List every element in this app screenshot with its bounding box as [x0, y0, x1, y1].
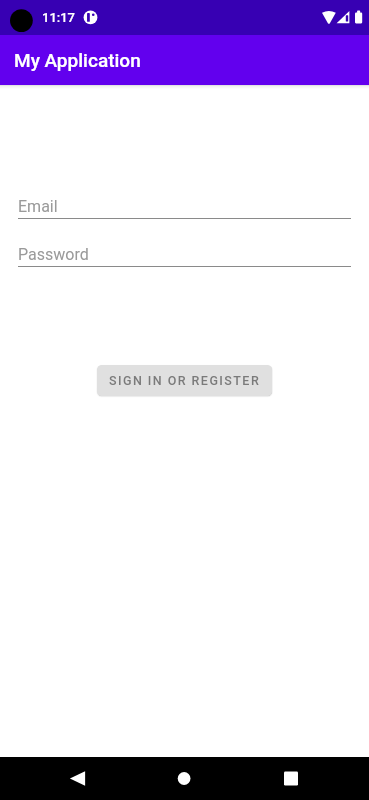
button[interactable]: SIGN IN OR REGISTER — [97, 365, 272, 396]
staticText: SIGN IN OR REGISTER — [109, 373, 261, 388]
staticText: Password — [18, 245, 89, 264]
button[interactable]: Email — [18, 193, 351, 219]
staticText: Email — [18, 197, 58, 216]
button[interactable]: Password — [18, 241, 351, 267]
button[interactable]: Home — [123, 757, 246, 800]
button[interactable]: Recent apps — [246, 757, 369, 800]
staticText: My Application — [14, 49, 141, 71]
button[interactable]: Back — [0, 757, 123, 800]
staticText: 11:17 — [42, 10, 76, 25]
